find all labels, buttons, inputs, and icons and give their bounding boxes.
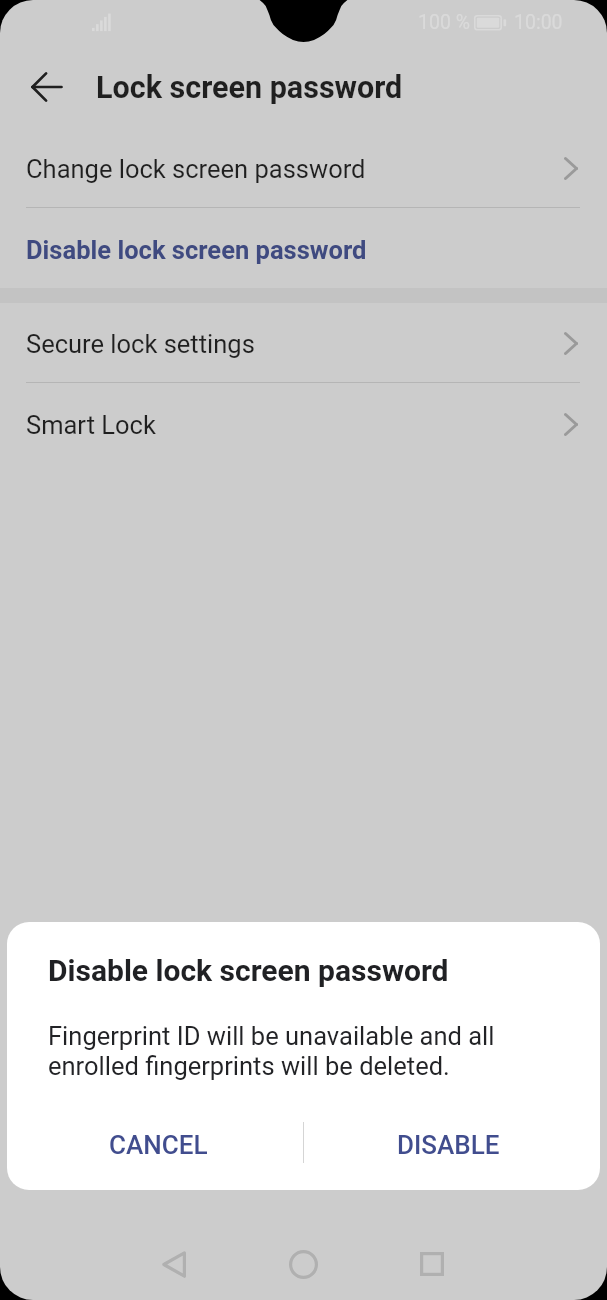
staticText: 100 % (418, 11, 470, 34)
staticText: Fingerprint ID will be unavailable and a… (48, 1021, 495, 1081)
button[interactable]: CANCEL (7, 1106, 303, 1182)
button[interactable]: Secure lock settings (0, 303, 607, 382)
staticText: DISABLE (397, 1130, 500, 1160)
button[interactable]: Back (16, 57, 76, 117)
staticText: Secure lock settings (26, 329, 255, 359)
staticText: CANCEL (109, 1130, 208, 1160)
staticText: Smart Lock (26, 410, 156, 440)
staticText: 10:00 (514, 11, 563, 34)
button[interactable]: Smart Lock (0, 384, 607, 463)
staticText: Change lock screen password (26, 154, 366, 184)
button[interactable]: Recents (396, 1228, 468, 1300)
button[interactable]: Home (267, 1228, 339, 1300)
button[interactable]: Disable lock screen password (0, 209, 607, 288)
staticText: Disable lock screen password (26, 235, 367, 265)
button[interactable]: Back (138, 1228, 210, 1300)
staticText: Disable lock screen password (48, 953, 449, 988)
staticText: Lock screen password (96, 70, 403, 106)
button[interactable]: Change lock screen password (0, 128, 607, 207)
button[interactable]: DISABLE (303, 1106, 600, 1182)
